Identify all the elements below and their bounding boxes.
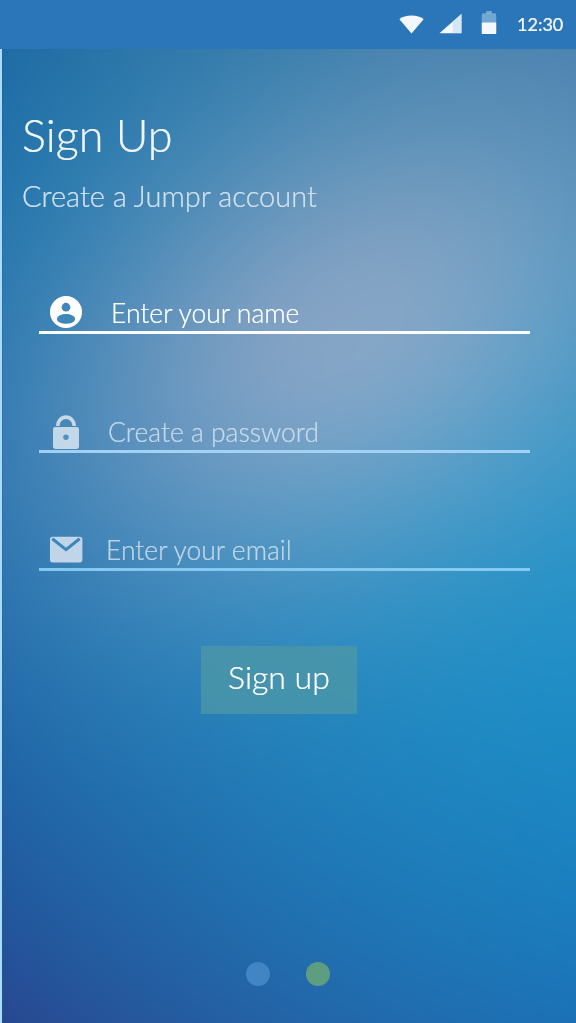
button[interactable]: Page 2	[306, 962, 330, 986]
staticText: Create a password	[108, 416, 320, 448]
button[interactable]: Page 1	[246, 962, 270, 986]
staticText: Enter your name	[111, 297, 300, 329]
staticText: Create a Jumpr account	[22, 178, 317, 213]
staticText: Enter your email	[106, 534, 292, 566]
button[interactable]: Enter your email	[39, 524, 530, 571]
button[interactable]: Enter your name	[39, 287, 530, 334]
staticText: Sign Up	[22, 108, 173, 162]
staticText: 12:30	[517, 13, 564, 35]
button[interactable]: Sign up	[201, 646, 357, 714]
button[interactable]: Create a password	[39, 406, 530, 453]
staticText: Sign up	[228, 657, 330, 695]
